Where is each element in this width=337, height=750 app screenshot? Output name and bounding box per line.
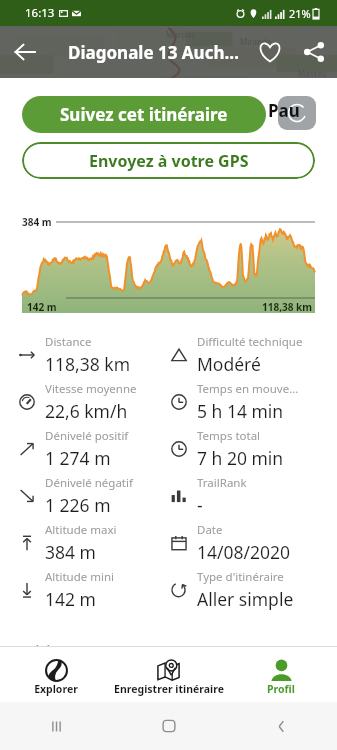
- staticText: 14/08/2020: [197, 540, 291, 564]
- staticText: 5 h 14 min: [197, 399, 284, 423]
- staticText: 1 274 m: [45, 446, 111, 470]
- button[interactable]: Enregistrer itinéraire: [92, 647, 245, 702]
- button[interactable]: Météo: [0, 642, 337, 646]
- staticText: -: [197, 493, 203, 517]
- staticText: Profil: [267, 682, 295, 696]
- button[interactable]: Map layers: [278, 96, 316, 130]
- staticText: Marciac: [166, 29, 196, 40]
- staticText: 1 226 m: [45, 493, 111, 517]
- staticText: 384 m: [22, 215, 52, 229]
- button[interactable]: TrailRank: [170, 475, 335, 517]
- staticText: Altitude mini: [45, 569, 115, 585]
- button[interactable]: Type d'itinéraire: [170, 569, 335, 611]
- staticText: 118,38 km: [262, 300, 312, 314]
- staticText: Masseu: [298, 68, 327, 79]
- button[interactable]: Profil: [205, 647, 337, 702]
- button[interactable]: Explorer: [0, 647, 132, 702]
- staticText: Météo: [22, 642, 59, 646]
- button[interactable]: Envoyez à votre GPS: [22, 142, 315, 179]
- staticText: Enregistrer itinéraire: [114, 682, 224, 696]
- staticText: Aller simple: [197, 587, 294, 611]
- button[interactable]: Altitude maxi: [18, 522, 166, 564]
- button[interactable]: Date: [170, 522, 335, 564]
- button[interactable]: Temps total: [170, 428, 335, 470]
- staticText: TrailRank: [197, 475, 247, 491]
- staticText: Dénivelé négatif: [45, 475, 133, 491]
- staticText: Type d'itinéraire: [197, 569, 284, 585]
- staticText: 384 m: [45, 540, 96, 564]
- staticText: 118,38 km: [45, 352, 130, 376]
- staticText: 142 m: [27, 300, 57, 314]
- button[interactable]: Altitude mini: [18, 569, 166, 611]
- staticText: Difficulté technique: [197, 334, 303, 350]
- staticText: Explorer: [34, 682, 78, 696]
- staticText: Date: [197, 522, 223, 538]
- button[interactable]: Temps en mouve…: [170, 381, 335, 423]
- staticText: 21%: [289, 6, 311, 21]
- staticText: Pau: [268, 99, 300, 122]
- staticText: 142 m: [45, 587, 96, 611]
- staticText: 22,6 km/h: [45, 399, 128, 423]
- staticText: Vitesse moyenne: [45, 381, 137, 397]
- button[interactable]: Distance: [18, 334, 166, 376]
- button[interactable]: Vitesse moyenne: [18, 381, 166, 423]
- staticText: Dénivelé positif: [45, 428, 129, 444]
- button[interactable]: Dénivelé positif: [18, 428, 166, 470]
- staticText: Modéré: [197, 352, 261, 376]
- button[interactable]: Dénivelé négatif: [18, 475, 166, 517]
- button[interactable]: Difficulté technique: [170, 334, 335, 376]
- button[interactable]: Favorite: [253, 35, 287, 69]
- staticText: Temps total: [197, 428, 261, 444]
- button[interactable]: Back: [8, 35, 42, 69]
- button[interactable]: Suivez cet itinéraire: [22, 96, 266, 133]
- staticText: 16:13: [25, 5, 55, 21]
- button[interactable]: Share: [297, 35, 331, 69]
- staticText: Suivez cet itinéraire: [60, 103, 228, 126]
- staticText: 7 h 20 min: [197, 446, 284, 470]
- staticText: Mirande: [240, 36, 272, 47]
- staticText: Altitude maxi: [45, 522, 117, 538]
- staticText: Distance: [45, 334, 92, 350]
- staticText: Envoyez à votre GPS: [89, 150, 249, 172]
- staticText: Diagonale 13 Auch…: [68, 41, 239, 64]
- staticText: Temps en mouve…: [197, 381, 299, 397]
